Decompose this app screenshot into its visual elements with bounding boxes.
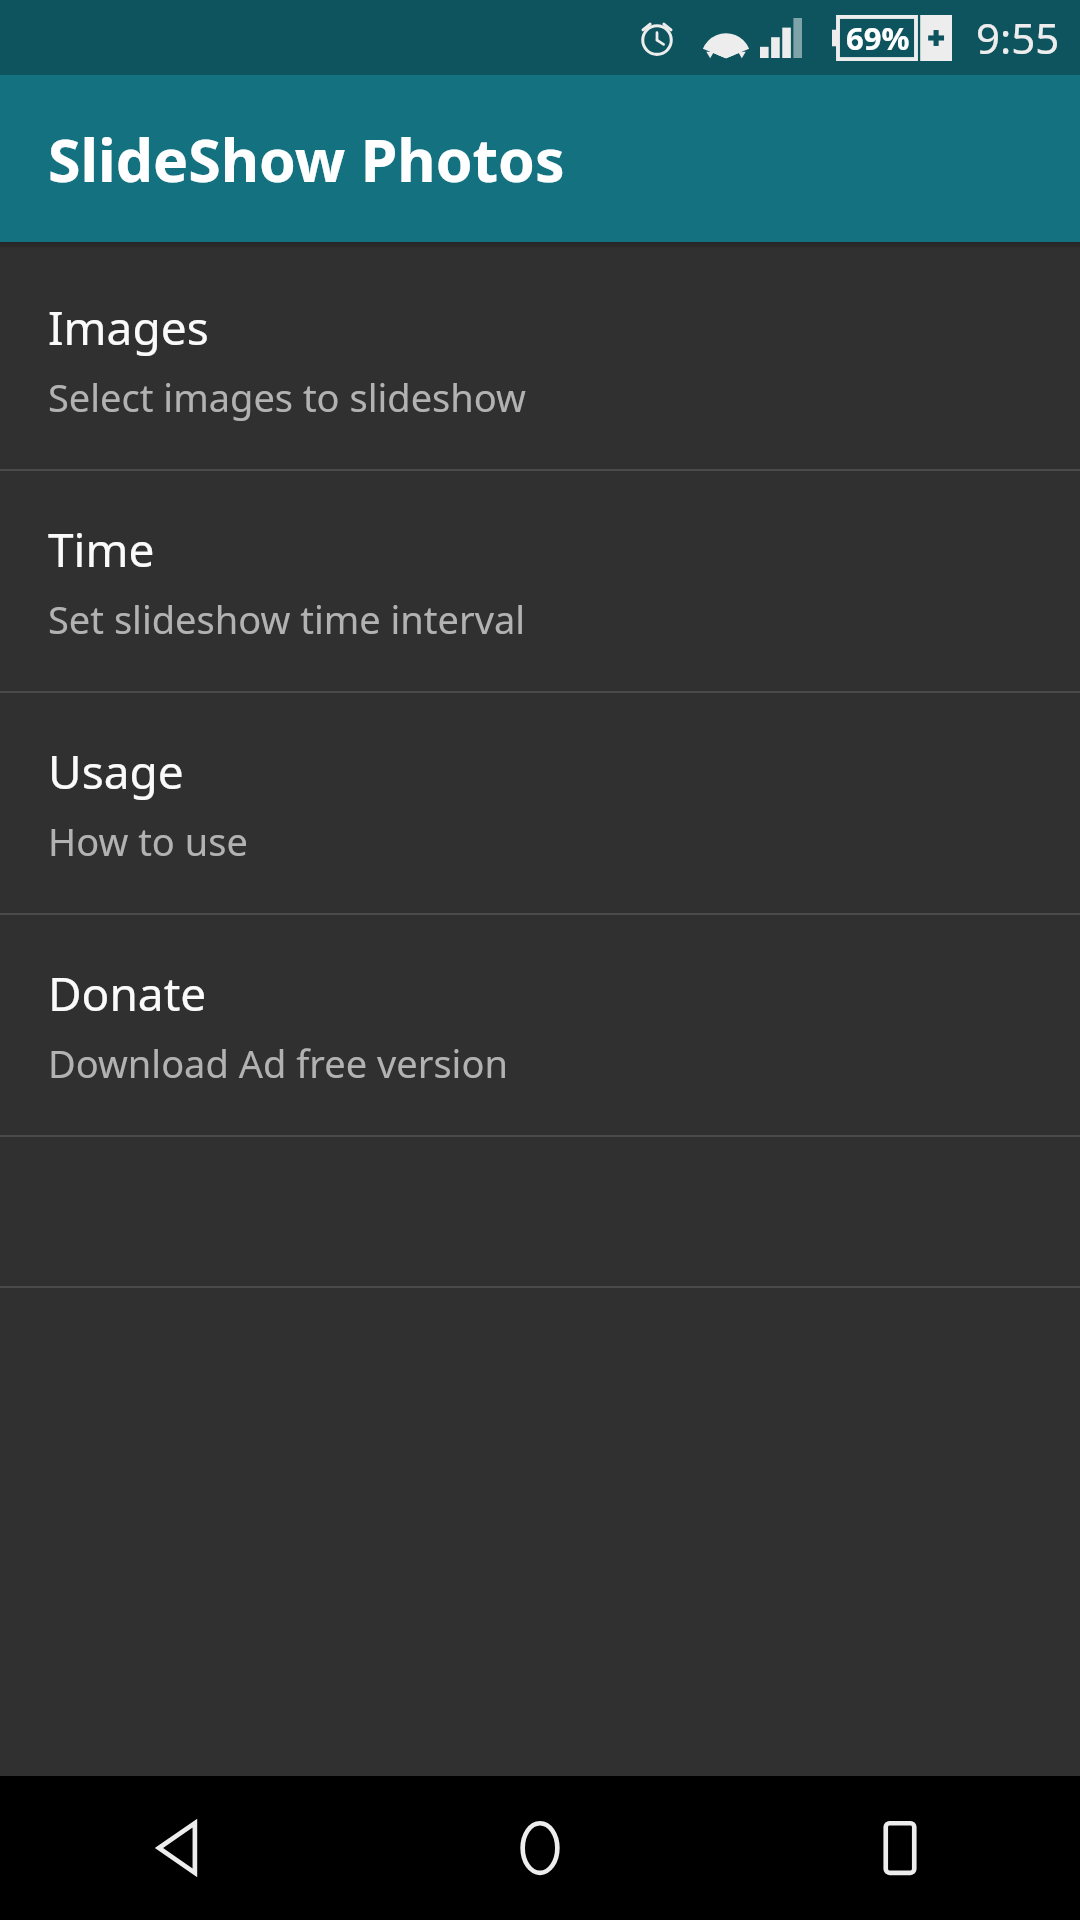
- button[interactable]: Usage: [0, 693, 1080, 913]
- staticText: 9:55: [976, 9, 1060, 66]
- button[interactable]: Back: [0, 1776, 360, 1920]
- button[interactable]: Home: [360, 1776, 720, 1920]
- button[interactable]: Donate: [0, 915, 1080, 1135]
- staticText: Donate: [48, 962, 207, 1025]
- staticText: Usage: [48, 740, 184, 803]
- button[interactable]: Recents: [720, 1776, 1080, 1920]
- staticText: SlideShow Photos: [48, 119, 565, 199]
- staticText: How to use: [48, 815, 248, 867]
- staticText: Download Ad free version: [48, 1037, 508, 1089]
- button[interactable]: Time: [0, 471, 1080, 691]
- staticText: Images: [48, 296, 209, 359]
- staticText: Time: [48, 518, 155, 581]
- button[interactable]: Images: [0, 249, 1080, 469]
- staticText: Select images to slideshow: [48, 371, 526, 423]
- staticText: 69%: [846, 17, 910, 59]
- staticText: Set slideshow time interval: [48, 593, 526, 645]
